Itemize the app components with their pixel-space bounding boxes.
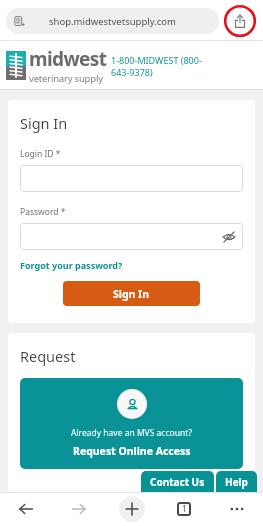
button[interactable]: Forgot your password?: [20, 259, 123, 271]
staticText: Request Online Access: [73, 444, 191, 458]
staticText: 1-800-MIDWEST (800-: [111, 54, 202, 66]
button[interactable]: [20, 165, 243, 192]
staticText: veterinary supply: [29, 72, 103, 85]
staticText: shop.midwestvetsupply.com: [49, 15, 176, 28]
button[interactable]: Contact Us: [141, 471, 214, 492]
button[interactable]: Show password: [20, 223, 243, 250]
button[interactable]: Back: [12, 495, 40, 523]
button[interactable]: Show password: [222, 230, 236, 244]
staticText: Already have an MVS account?: [71, 427, 192, 439]
staticText: Sign In: [113, 287, 150, 301]
button[interactable]: Share: [223, 4, 257, 38]
staticText: 643-9378): [111, 66, 153, 78]
staticText: Contact Us: [150, 475, 205, 489]
staticText: Sign In: [20, 113, 68, 133]
button[interactable]: Forward: [65, 495, 93, 523]
button[interactable]: 1-800-MIDWEST (800-: [111, 54, 202, 78]
staticText: Help: [225, 475, 248, 489]
button[interactable]: shop.midwestvetsupply.com: [6, 8, 219, 34]
staticText: Password *: [20, 206, 66, 218]
button[interactable]: Already have an MVS account?: [20, 378, 243, 469]
button[interactable]: Tabs: [170, 495, 198, 523]
staticText: Forgot your password?: [20, 259, 123, 271]
button[interactable]: midwest: [6, 46, 107, 85]
button[interactable]: Sign In: [63, 281, 200, 306]
staticText: midwest: [29, 46, 107, 72]
staticText: Request: [20, 346, 76, 366]
staticText: 1: [182, 503, 187, 515]
button[interactable]: More options: [223, 495, 251, 523]
button[interactable]: New tab: [119, 496, 145, 522]
staticText: Login ID *: [20, 148, 61, 160]
button[interactable]: Help: [216, 471, 257, 492]
